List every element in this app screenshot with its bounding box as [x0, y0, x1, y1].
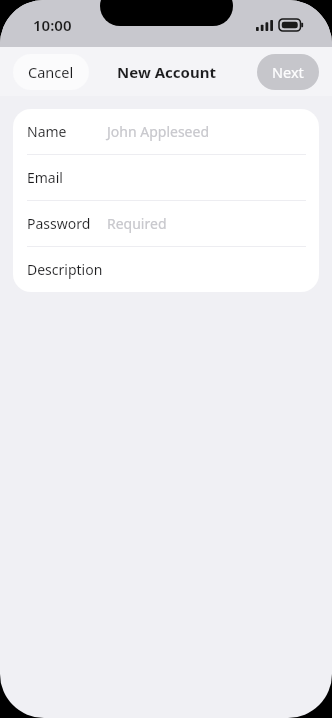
- staticText: Password: [27, 214, 91, 233]
- button[interactable]: Password: [13, 201, 319, 247]
- button[interactable]: Description: [13, 247, 319, 292]
- staticText: New Account: [117, 62, 216, 82]
- staticText: Email: [27, 168, 63, 187]
- staticText: Cancel: [28, 62, 74, 82]
- staticText: Required: [107, 214, 167, 233]
- staticText: Name: [27, 122, 67, 141]
- button[interactable]: Name: [13, 109, 319, 155]
- staticText: Description: [27, 260, 103, 279]
- staticText: 10:00: [33, 15, 72, 35]
- staticText: Next: [272, 62, 304, 82]
- button[interactable]: Email: [13, 155, 319, 201]
- button[interactable]: Cancel: [13, 54, 89, 90]
- staticText: John Appleseed: [107, 122, 210, 141]
- button[interactable]: Next: [257, 54, 319, 90]
